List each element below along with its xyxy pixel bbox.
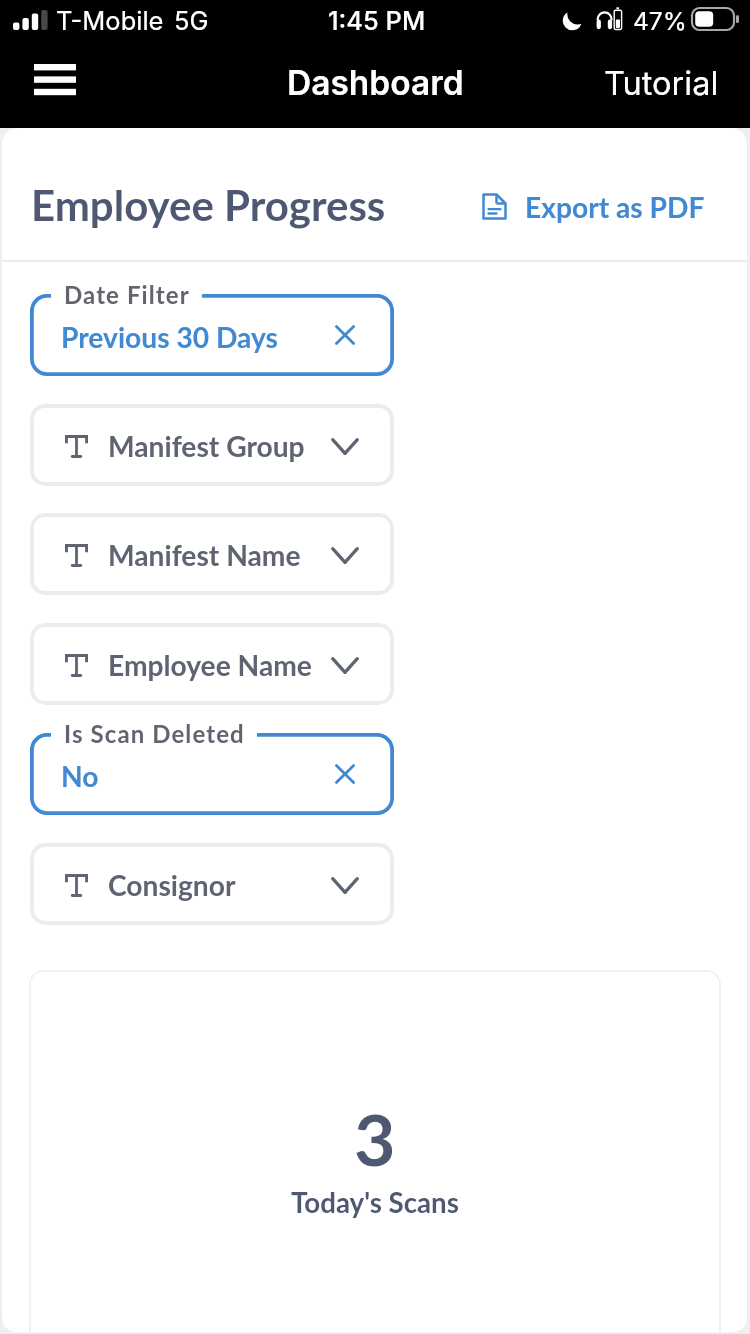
staticText: Employee Name — [108, 648, 312, 682]
staticText: Previous 30 Days — [61, 320, 278, 354]
staticText: Manifest Group — [108, 429, 305, 463]
staticText: Export as PDF — [525, 190, 705, 224]
button[interactable]: Manifest Name — [30, 513, 394, 595]
button[interactable]: 3 — [29, 970, 721, 1332]
button[interactable]: Employee Name — [30, 623, 394, 705]
staticText: 3 — [354, 1095, 396, 1181]
button[interactable]: Manifest Group — [30, 404, 394, 486]
staticText: 5G — [174, 5, 209, 36]
staticText: T-Mobile — [56, 5, 164, 36]
button[interactable]: Clear Is Scan Deleted — [323, 752, 367, 796]
other: Export as PDF — [482, 193, 507, 220]
staticText: Is Scan Deleted — [64, 719, 245, 748]
staticText: 47% — [633, 6, 687, 36]
button[interactable]: Clear Date Filter — [323, 313, 367, 357]
staticText: Consignor — [108, 868, 236, 902]
staticText: Today's Scans — [291, 1186, 459, 1219]
staticText: No — [61, 759, 99, 793]
button[interactable]: Previous 30 Days — [30, 294, 394, 376]
staticText: Employee Progress — [31, 180, 386, 230]
staticText: 1:45 PM — [328, 5, 426, 36]
button[interactable]: Consignor — [30, 843, 394, 925]
button[interactable]: Export as PDF — [482, 176, 705, 236]
button[interactable]: Menu — [16, 48, 90, 118]
staticText: Dashboard — [287, 63, 464, 104]
staticText: Tutorial — [604, 64, 719, 103]
staticText: Manifest Name — [108, 538, 301, 572]
button[interactable]: Tutorial — [588, 48, 734, 118]
button[interactable]: No — [30, 733, 394, 815]
staticText: Date Filter — [64, 280, 190, 309]
